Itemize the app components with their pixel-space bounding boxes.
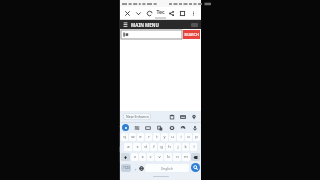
- button[interactable]: p: [193, 133, 200, 141]
- staticText: c: [149, 154, 152, 160]
- button[interactable]: w: [129, 133, 136, 141]
- button[interactable]: b: [164, 153, 172, 161]
- button[interactable]: GIF: [144, 124, 152, 132]
- staticText: x: [141, 154, 144, 160]
- button[interactable]: d: [142, 143, 149, 151]
- button[interactable]: Expand: [133, 7, 144, 20]
- staticText: ,: [135, 165, 137, 172]
- staticText: j: [177, 144, 179, 150]
- button[interactable]: k: [182, 143, 189, 151]
- staticText: s: [136, 144, 139, 150]
- button[interactable]: j: [174, 143, 181, 151]
- staticText: i: [180, 134, 182, 140]
- button[interactable]: Backspace: [191, 153, 200, 161]
- staticText: SEARCH: [184, 32, 199, 37]
- staticText: e: [139, 134, 142, 140]
- button[interactable]: m: [182, 153, 190, 161]
- staticText: n: [176, 154, 179, 160]
- staticText: u: [171, 134, 174, 140]
- button[interactable]: Clipboard: [168, 113, 176, 121]
- button[interactable]: Share: [166, 7, 177, 20]
- button[interactable]: Shift: [121, 153, 130, 161]
- staticText: y: [163, 134, 166, 140]
- button[interactable]: Settings: [168, 124, 176, 132]
- button[interactable]: x: [139, 153, 146, 161]
- button[interactable]: Translate: [156, 124, 164, 132]
- button[interactable]: English: [145, 164, 189, 172]
- staticText: t: [156, 134, 158, 140]
- staticText: m: [184, 154, 188, 160]
- button[interactable]: MAIN MENU: [120, 20, 201, 29]
- staticText: d: [144, 144, 147, 150]
- button[interactable]: Search: [191, 163, 200, 172]
- staticText: v: [158, 154, 161, 160]
- button[interactable]: Close: [122, 7, 133, 20]
- button[interactable]: c: [147, 153, 154, 161]
- button[interactable]: a: [124, 143, 132, 151]
- staticText: Techline…: [155, 9, 166, 16]
- button[interactable]: Refresh: [144, 7, 155, 20]
- button[interactable]: Account: [191, 23, 198, 27]
- button[interactable]: s: [133, 143, 141, 151]
- staticText: z: [134, 154, 136, 160]
- button[interactable]: h: [166, 143, 173, 151]
- button[interactable]: q: [121, 133, 128, 141]
- button[interactable]: f: [150, 143, 157, 151]
- staticText: f: [153, 144, 155, 150]
- staticText: p: [195, 134, 198, 140]
- staticText: 0b: [196, 152, 205, 162]
- button[interactable]: SEARCH: [183, 30, 200, 39]
- button[interactable]: z: [131, 153, 138, 161]
- staticText: r: [148, 134, 150, 140]
- staticText: k: [184, 144, 187, 150]
- button[interactable]: [121, 30, 182, 39]
- button[interactable]: New Enhance: [123, 113, 151, 120]
- button[interactable]: l: [190, 143, 197, 151]
- button[interactable]: i: [177, 133, 184, 141]
- button[interactable]: y: [161, 133, 168, 141]
- button[interactable]: Location: [190, 113, 198, 121]
- staticText: English: [161, 166, 173, 171]
- button[interactable]: n: [173, 153, 181, 161]
- button[interactable]: e: [137, 133, 144, 141]
- staticText: MAIN MENU: [131, 22, 159, 28]
- button[interactable]: g: [158, 143, 165, 151]
- button[interactable]: Tabs: [177, 7, 188, 20]
- staticText: New Enhance: [62, 140, 133, 155]
- staticText: New Enhance: [126, 114, 149, 119]
- button[interactable]: Voice input: [191, 124, 199, 132]
- staticText: h: [168, 144, 171, 150]
- button[interactable]: v: [155, 153, 163, 161]
- button[interactable]: More options: [188, 7, 199, 20]
- staticText: g: [160, 144, 163, 150]
- button[interactable]: Change language: [138, 164, 144, 172]
- staticText: o: [187, 134, 190, 140]
- staticText: l: [193, 144, 195, 150]
- button[interactable]: t: [153, 133, 160, 141]
- button[interactable]: Symbols: [121, 164, 131, 172]
- button[interactable]: u: [169, 133, 176, 141]
- button[interactable]: r: [145, 133, 152, 141]
- staticText: b: [167, 154, 170, 160]
- button[interactable]: Gboard: [122, 124, 129, 131]
- staticText: ?123: [123, 166, 130, 170]
- button[interactable]: Comma: [133, 164, 138, 172]
- button[interactable]: Techline…: [155, 9, 166, 19]
- button[interactable]: Payment card: [179, 113, 187, 121]
- button[interactable]: Palette: [179, 124, 187, 132]
- staticText: a: [127, 144, 130, 150]
- button[interactable]: o: [185, 133, 192, 141]
- staticText: q: [123, 134, 126, 140]
- button[interactable]: Themes: [133, 124, 141, 132]
- staticText: w: [131, 134, 135, 140]
